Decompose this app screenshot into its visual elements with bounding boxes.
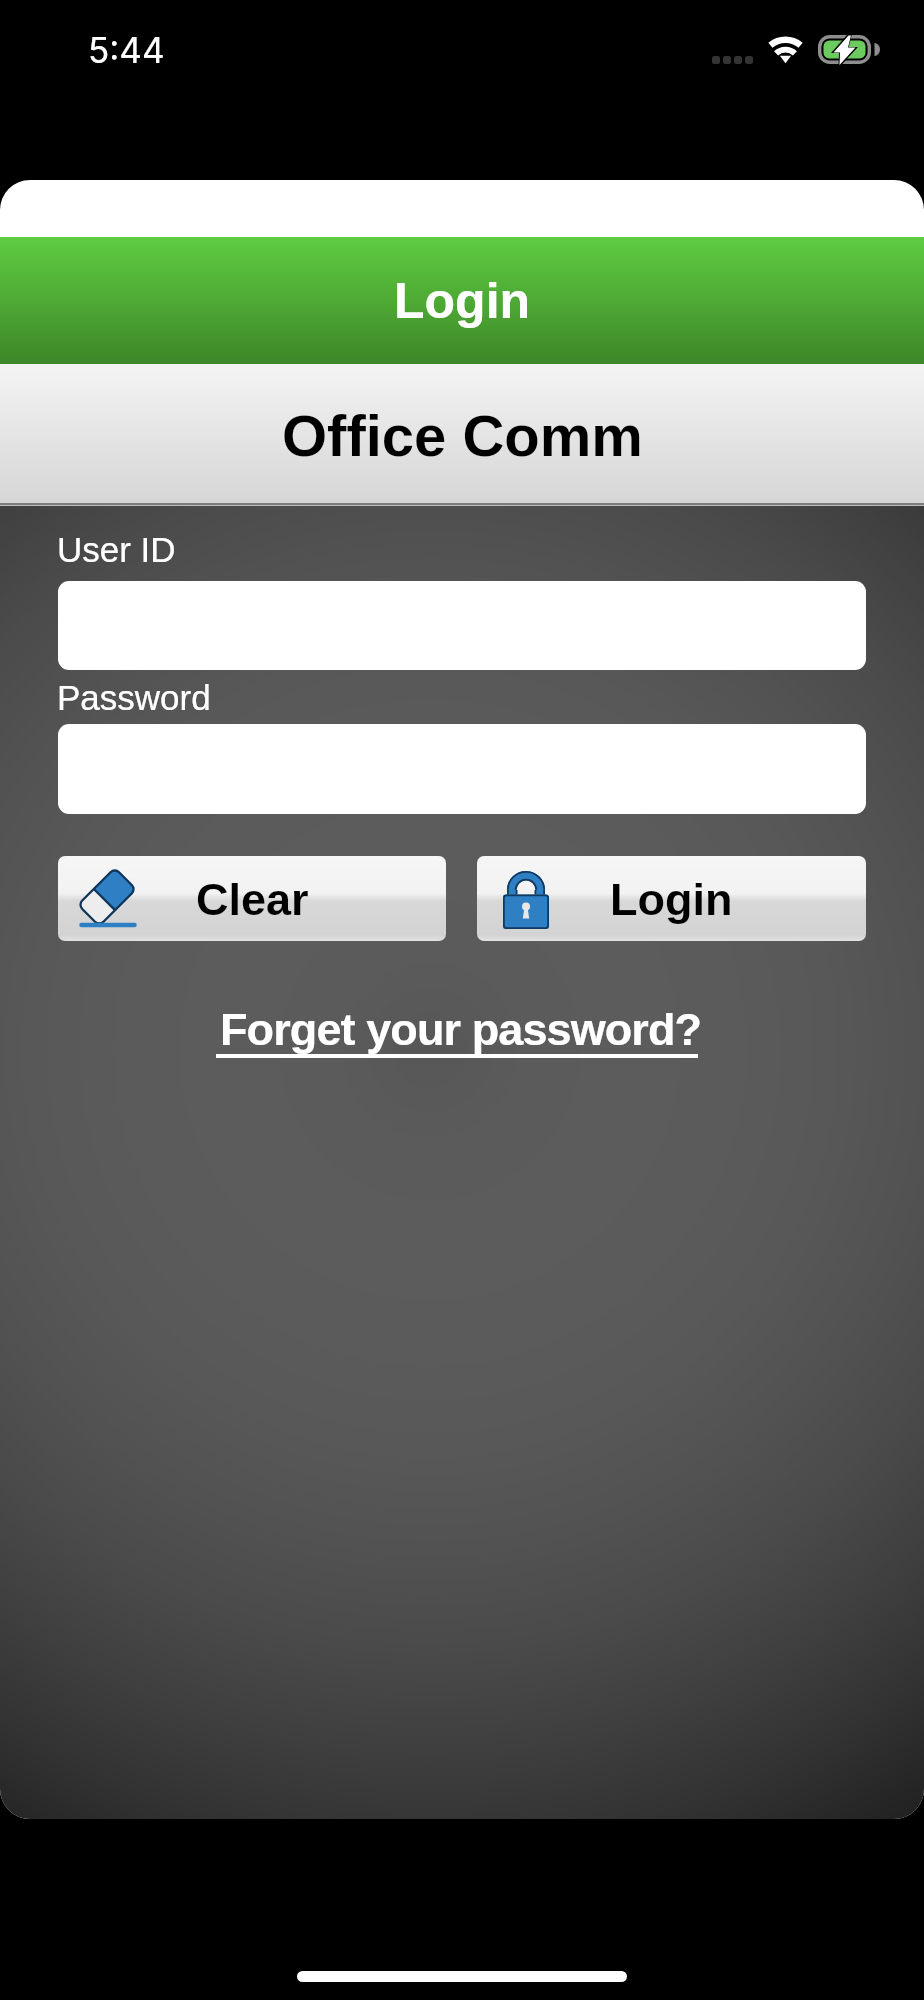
other: Wi-Fi [767, 36, 804, 64]
button[interactable]: Forget your password? [216, 1005, 698, 1063]
staticText: Login [394, 273, 531, 329]
staticText: Forget your password? [220, 1004, 702, 1054]
button[interactable] [58, 581, 866, 670]
button[interactable] [58, 724, 866, 814]
other: Battery charging [818, 35, 880, 64]
staticText: Office Comm [282, 403, 643, 468]
other: Cellular signal [712, 56, 753, 64]
staticText: Login [610, 874, 733, 924]
staticText: User ID [57, 530, 176, 569]
button[interactable]: Clear [58, 856, 446, 941]
staticText: 5:44 [88, 29, 165, 71]
staticText: Clear [196, 874, 309, 924]
button[interactable]: Login [477, 856, 866, 941]
staticText: Password [57, 678, 211, 717]
